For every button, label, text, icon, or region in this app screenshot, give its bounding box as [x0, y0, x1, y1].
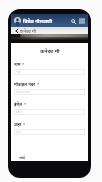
button[interactable]: Search — [69, 17, 77, 25]
staticText: मोबाइल नंबर — [14, 82, 36, 88]
staticText: * — [23, 122, 26, 128]
staticText: जोड़ें — [19, 155, 26, 160]
staticText: कनेक्ट मी — [20, 28, 37, 34]
staticText: ईमेल — [14, 102, 23, 108]
staticText: नाम — [14, 62, 21, 68]
button[interactable]: नाम — [16, 69, 83, 75]
button[interactable]: Back — [14, 28, 19, 33]
button[interactable]: मोबाइल नंबर — [16, 89, 83, 95]
staticText: विवेक गोलवाणी — [23, 18, 53, 24]
button[interactable]: Menu — [78, 17, 86, 25]
staticText: * — [24, 102, 27, 108]
staticText: * — [22, 62, 25, 68]
button[interactable]: जोड़ें — [19, 155, 26, 160]
button[interactable]: शहर — [16, 129, 83, 135]
staticText: कनेक्ट मी — [40, 47, 60, 54]
staticText: मोबाइल नंबर — [16, 90, 30, 94]
staticText: नाम — [16, 70, 21, 74]
staticText: शहर — [16, 130, 21, 134]
staticText: शहर — [14, 122, 22, 128]
staticText: * — [37, 82, 40, 88]
button[interactable]: ईमेल — [16, 109, 83, 115]
staticText: ईमेल — [16, 110, 22, 114]
